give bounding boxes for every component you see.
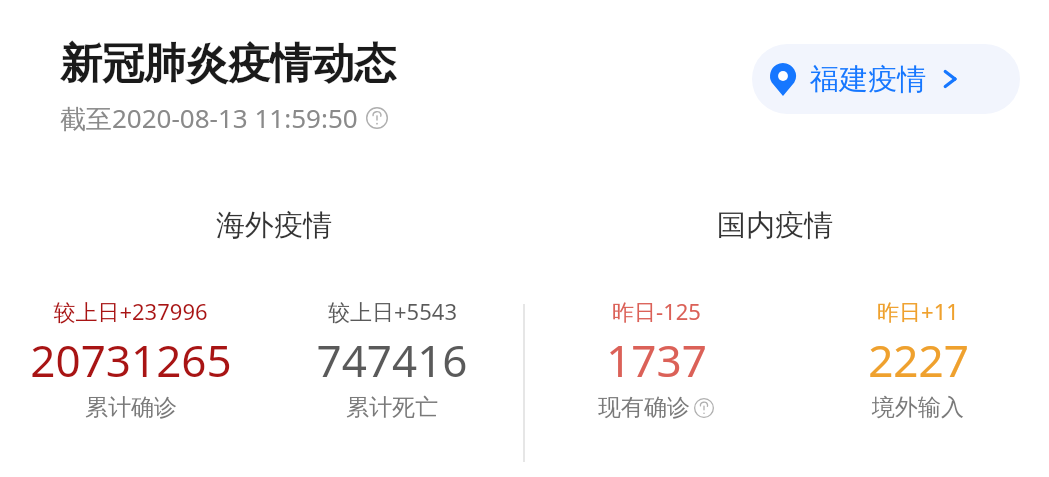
button[interactable]: 较上日+5543 [261,296,523,422]
staticText: 较上日+5543 [328,296,457,326]
staticText: 境外输入 [872,393,964,422]
staticText: 20731265 [30,330,232,390]
staticText: 福建疫情 [810,61,926,98]
staticText: 新冠肺炎疫情动态 [60,38,396,91]
staticText: 747416 [316,330,468,390]
staticText: 累计确诊 [85,393,177,422]
staticText: 海外疫情 [216,207,332,244]
staticText: 昨日-125 [612,296,701,326]
button[interactable]: 昨日-125 [525,296,787,422]
button[interactable]: 昨日+11 [787,296,1049,422]
button[interactable]: 较上日+237996 [0,296,261,422]
staticText: 现有确诊 [598,393,690,422]
staticText: 国内疫情 [717,207,833,244]
staticText: 累计死亡 [346,393,438,422]
staticText: 截至2020-08-13 11:59:50 [60,100,358,136]
button[interactable]: 福建疫情 [752,44,1020,114]
staticText: 2227 [868,330,969,390]
staticText: 昨日+11 [877,296,959,326]
staticText: 1737 [606,330,707,390]
staticText: 较上日+237996 [53,296,208,326]
